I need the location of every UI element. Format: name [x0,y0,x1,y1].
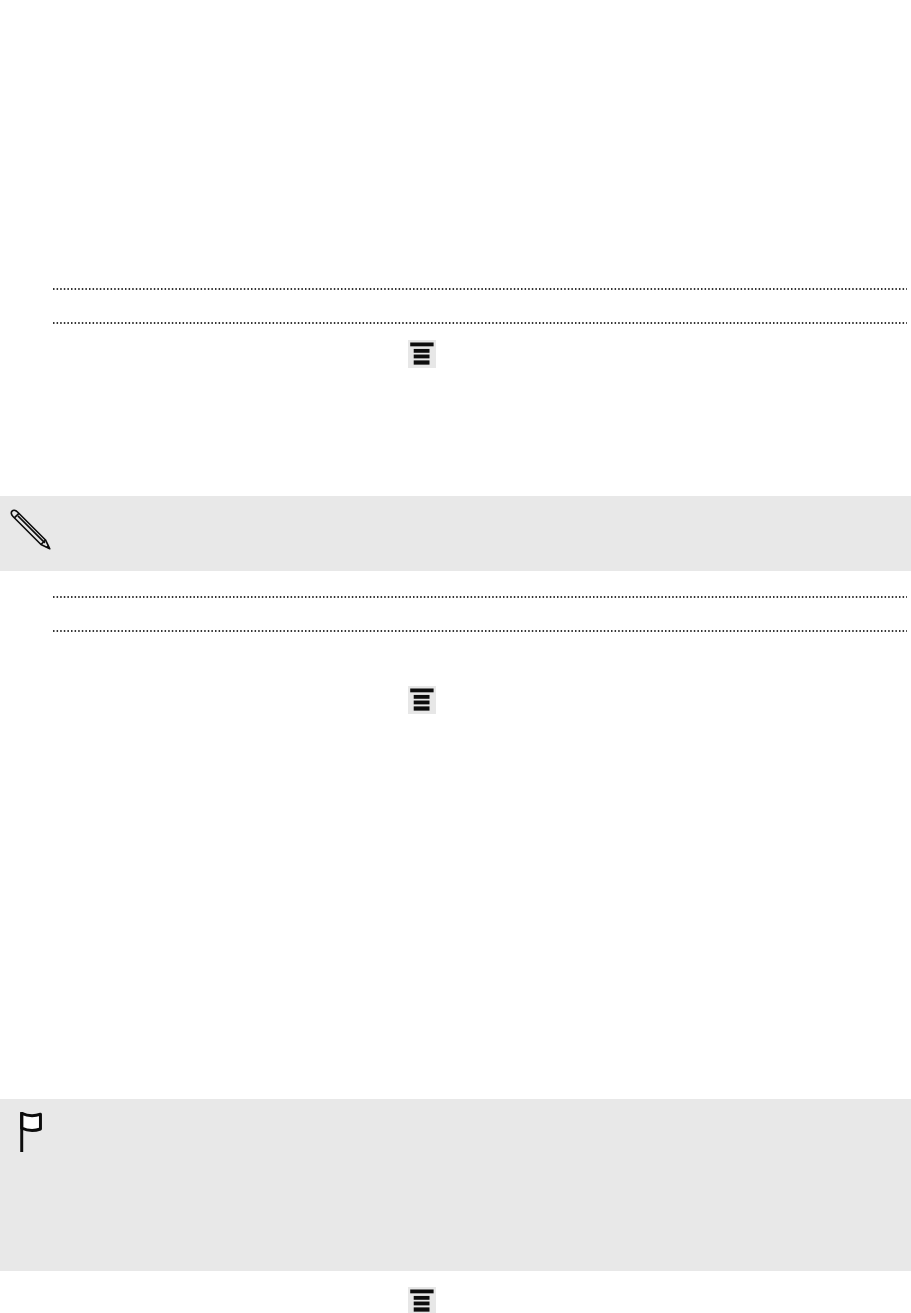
button[interactable]: Flag item [20,1112,42,1152]
button[interactable]: Show list options [408,686,436,714]
button[interactable]: Note [0,496,911,571]
button[interactable]: Flagged [0,1099,911,1271]
button[interactable]: Edit note [10,509,51,550]
button[interactable]: Show list options [408,340,436,368]
button[interactable]: Show list options [408,1287,436,1313]
